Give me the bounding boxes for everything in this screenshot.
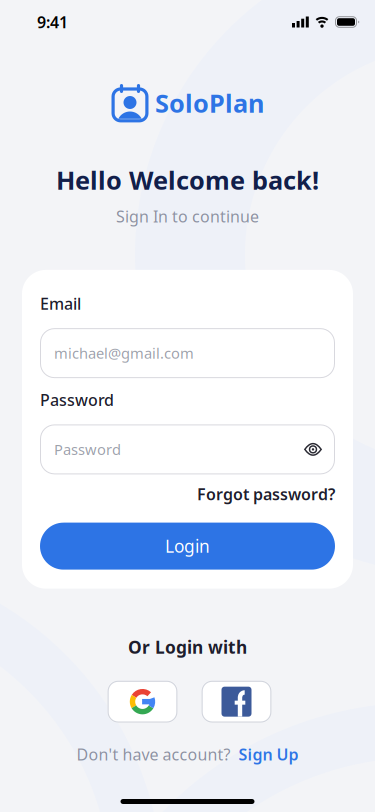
staticText: Or Login with <box>128 636 247 659</box>
staticText: michael@gmail.com <box>54 343 194 363</box>
staticText: Email <box>40 293 81 314</box>
staticText: 9:41 <box>37 11 68 33</box>
staticText: Don't have account? <box>76 744 230 765</box>
button[interactable]: Forgot password? <box>197 483 335 505</box>
button[interactable]: Login with Facebook <box>201 681 271 723</box>
button[interactable]: Login with Google <box>107 681 177 723</box>
staticText: Password <box>40 389 114 410</box>
staticText: Forgot password? <box>197 483 335 505</box>
staticText: Hello Welcome back! <box>56 163 319 197</box>
staticText: Sign Up <box>238 744 298 765</box>
staticText: Login <box>165 535 210 558</box>
staticText: Sign In to continue <box>116 206 259 227</box>
staticText: SoloPlan <box>155 86 264 120</box>
button[interactable]: Show password <box>304 443 322 456</box>
button[interactable]: Sign Up <box>238 744 298 765</box>
button[interactable]: Login <box>40 523 335 570</box>
staticText: Password <box>54 440 121 459</box>
